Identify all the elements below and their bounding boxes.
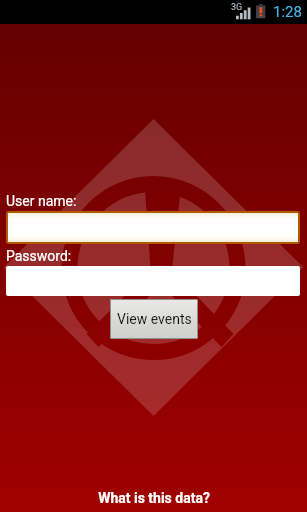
button[interactable] — [6, 211, 300, 244]
staticText: User name: — [6, 193, 77, 209]
staticText: View events — [117, 311, 192, 327]
button[interactable]: View events — [110, 299, 198, 339]
staticText: Password: — [6, 248, 72, 264]
staticText: 3G — [231, 2, 243, 13]
button[interactable] — [6, 266, 300, 296]
staticText: What is this data? — [98, 490, 210, 506]
staticText: 1:28 — [273, 3, 302, 21]
button[interactable]: What is this data? — [0, 490, 307, 506]
